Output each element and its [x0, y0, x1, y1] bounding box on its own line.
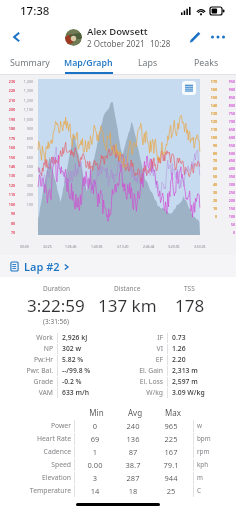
staticText: Laps — [138, 57, 158, 69]
staticText: 1:06:46 — [65, 244, 77, 249]
staticText: 965 — [152, 421, 190, 431]
staticText: 20 — [204, 198, 217, 203]
staticText: TSS — [184, 284, 195, 293]
staticText: 14 — [76, 486, 114, 496]
staticText: 600 — [17, 155, 33, 160]
staticText: El. Loss — [118, 377, 163, 386]
staticText: --/99.8 % — [62, 366, 118, 375]
staticText: 210 — [2, 98, 15, 103]
staticText: NP — [8, 344, 53, 353]
staticText: 2:46:44 — [143, 244, 155, 249]
staticText: IF — [118, 333, 163, 342]
staticText: 110 — [204, 127, 217, 132]
staticText: 0.00 — [76, 460, 114, 470]
staticText: 2,926 kJ — [62, 333, 118, 342]
staticText: 450 — [219, 158, 235, 163]
staticText: 00:00 — [20, 244, 29, 249]
staticText: 130 — [204, 111, 217, 116]
staticText: 3:22:59 — [27, 294, 85, 317]
staticText: Peaks — [194, 57, 219, 69]
staticText: 137 km — [98, 294, 157, 317]
staticText: 38.7 — [114, 460, 152, 470]
button[interactable]: Lap #2 — [0, 255, 236, 277]
staticText: Temperature — [10, 486, 71, 495]
staticText: 230 — [2, 79, 15, 84]
staticText: EF — [118, 355, 163, 364]
staticText: Grade — [8, 377, 53, 386]
staticText: kph — [197, 460, 226, 469]
staticText: Speed — [10, 460, 71, 469]
staticText: Duration — [43, 284, 70, 293]
button[interactable]: More options — [207, 26, 229, 48]
staticText: VI — [118, 344, 163, 353]
staticText: w — [197, 421, 226, 430]
staticText: 400 — [219, 166, 235, 171]
staticText: Distance — [114, 284, 141, 293]
staticText: 1 — [76, 447, 114, 457]
staticText: 900 — [17, 126, 33, 131]
staticText: 750 — [219, 111, 235, 116]
staticText: 40 — [204, 182, 217, 187]
button[interactable]: Summary — [0, 52, 59, 74]
staticText: 287 — [114, 473, 152, 483]
staticText: Pwr. Bal. — [8, 366, 53, 375]
staticText: 140 — [204, 103, 217, 108]
staticText: 150 — [204, 95, 217, 100]
staticText: 5.82 % — [62, 355, 118, 364]
staticText: 700 — [17, 145, 33, 150]
staticText: 69 — [76, 434, 114, 444]
button[interactable]: Peaks — [177, 52, 236, 74]
staticText: 240 — [114, 421, 152, 431]
staticText: 1:40:05 — [91, 244, 103, 249]
staticText: 170 — [2, 136, 15, 141]
staticText: 100 — [219, 214, 235, 219]
staticText: 100 — [204, 135, 217, 140]
staticText: 650 — [219, 127, 235, 132]
staticText: VAM — [8, 388, 53, 397]
button[interactable]: Edit — [183, 26, 205, 48]
staticText: El. Gain — [118, 366, 163, 375]
staticText: 1,400 — [17, 79, 33, 84]
staticText: 90 — [204, 143, 217, 148]
staticText: 100 — [17, 202, 33, 207]
staticText: (3:31:56) — [43, 317, 69, 326]
staticText: C — [197, 486, 226, 495]
staticText: 110 — [2, 192, 15, 197]
staticText: 850 — [219, 95, 235, 100]
staticText: 1,200 — [17, 98, 33, 103]
staticText: 1,100 — [17, 107, 33, 112]
staticText: 70 — [204, 158, 217, 163]
staticText: 800 — [219, 103, 235, 108]
staticText: 100 — [2, 202, 15, 207]
staticText: -0.2 % — [62, 377, 118, 386]
staticText: 3 — [76, 473, 114, 483]
staticText: 300 — [17, 183, 33, 188]
staticText: Heart Rate — [10, 434, 71, 443]
button[interactable]: Chart legend — [182, 81, 196, 95]
staticText: 150 — [219, 206, 235, 211]
button[interactable]: Map/Graph — [59, 52, 118, 74]
staticText: 170 — [204, 79, 217, 84]
staticText: 500 — [219, 151, 235, 156]
staticText: 550 — [219, 143, 235, 148]
staticText: 944 — [152, 473, 190, 483]
staticText: rpm — [197, 447, 226, 456]
staticText: 225 — [152, 434, 190, 444]
button[interactable]: Back — [4, 24, 30, 50]
staticText: 0 — [204, 214, 217, 219]
staticText: m — [197, 473, 226, 482]
staticText: Max — [154, 407, 192, 418]
staticText: 3.09 W/kg — [172, 388, 228, 397]
staticText: Work — [8, 333, 53, 342]
staticText: 10 — [204, 206, 217, 211]
staticText: 600 — [219, 135, 235, 140]
staticText: 80 — [204, 151, 217, 156]
staticText: 900 — [219, 87, 235, 92]
button[interactable]: Laps — [118, 52, 177, 74]
staticText: 2.20 — [172, 355, 228, 364]
staticText: 200 — [219, 198, 235, 203]
staticText: 0 — [219, 230, 235, 235]
staticText: 300 — [219, 182, 235, 187]
staticText: 633 m/h — [62, 388, 118, 397]
staticText: 17:38 — [20, 3, 50, 19]
